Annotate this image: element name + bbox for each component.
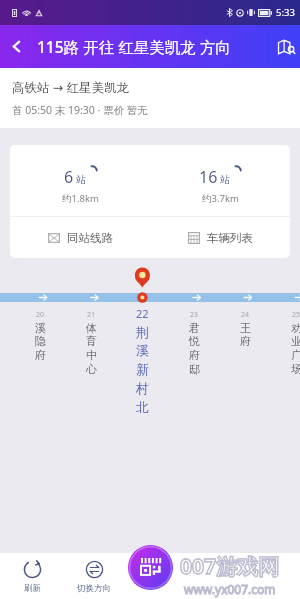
- button[interactable]: Back: [0, 25, 32, 68]
- staticText: 体 育 中 心: [86, 321, 97, 377]
- button[interactable]: 20: [16, 310, 64, 440]
- button[interactable]: 22: [118, 306, 166, 436]
- staticText: 切换方向: [77, 583, 111, 594]
- staticText: 站: [220, 173, 230, 186]
- button[interactable]: 23: [170, 310, 218, 440]
- staticText: 王 府: [240, 321, 251, 349]
- button[interactable]: 21: [67, 310, 115, 440]
- button[interactable]: 切换方向: [64, 553, 124, 599]
- button[interactable]: 车辆列表: [150, 217, 290, 258]
- staticText: 007游戏网: [180, 552, 280, 581]
- staticText: 溪 隐 府: [35, 321, 46, 363]
- staticText: 劝 业 广 场: [291, 321, 300, 377]
- staticText: www.yx007.com: [184, 581, 276, 597]
- button[interactable]: 25: [272, 310, 300, 440]
- staticText: 站: [76, 173, 86, 186]
- staticText: 刷新: [24, 583, 41, 594]
- staticText: 约1.8km: [62, 192, 99, 205]
- staticText: 22: [136, 306, 149, 321]
- staticText: 5:33: [276, 6, 295, 19]
- button[interactable]: Search: [272, 25, 300, 68]
- staticText: 车辆列表: [207, 231, 253, 245]
- staticText: 20: [36, 310, 45, 320]
- staticText: 25: [292, 310, 300, 320]
- staticText: 荆 溪 新 村 北: [136, 324, 149, 416]
- staticText: 23: [190, 310, 199, 320]
- button[interactable]: 24: [221, 310, 269, 440]
- button[interactable]: 6: [10, 145, 150, 216]
- button[interactable]: 同站线路: [10, 217, 150, 258]
- staticText: 6: [64, 166, 74, 188]
- staticText: 高铁站 → 红星美凯龙: [12, 79, 129, 96]
- staticText: 约3.7km: [202, 192, 239, 205]
- staticText: 21: [87, 310, 96, 320]
- staticText: 同站线路: [67, 231, 113, 245]
- staticText: 16: [199, 166, 218, 188]
- staticText: 24: [241, 310, 250, 320]
- staticText: 115路 开往 红星美凯龙 方向: [37, 36, 231, 57]
- staticText: 君 悦 府 邸: [189, 321, 200, 377]
- button[interactable]: 刷新: [2, 553, 62, 599]
- button[interactable]: 16: [150, 145, 290, 216]
- button[interactable]: Scan QR code: [128, 545, 173, 590]
- staticText: 首 05:50 末 19:30 · 票价 暂无: [12, 103, 148, 117]
